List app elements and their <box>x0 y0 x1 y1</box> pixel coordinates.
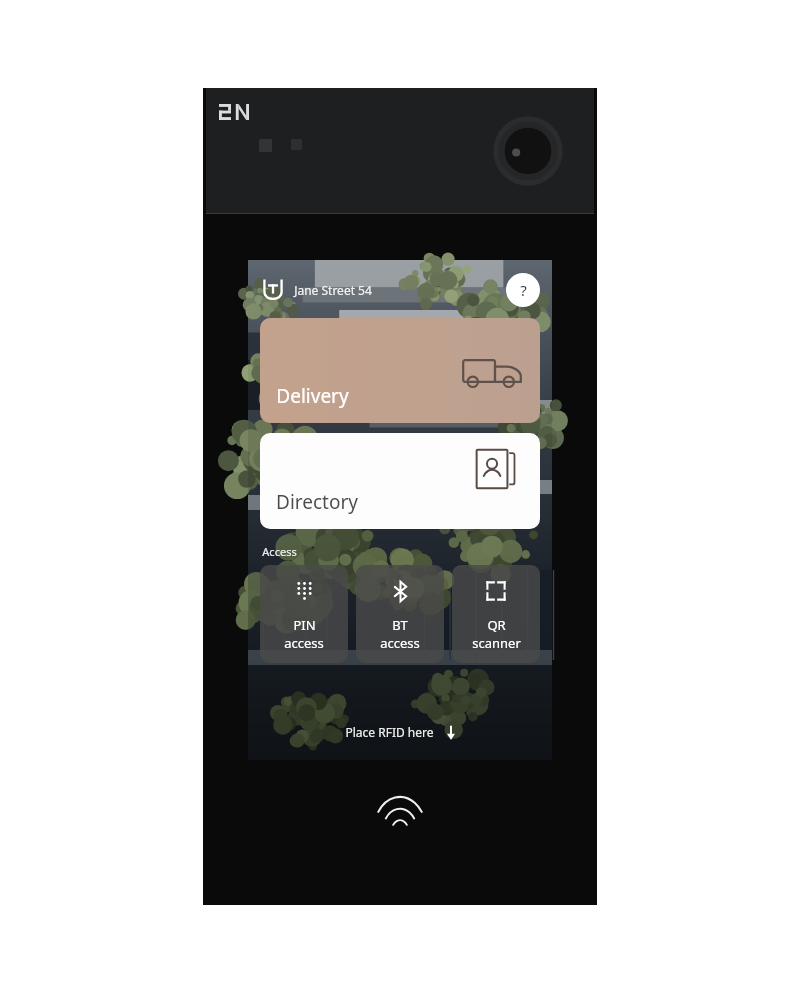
staticText: access <box>284 634 324 652</box>
staticText: Access <box>262 544 297 559</box>
staticText: QR <box>487 616 506 634</box>
staticText: PIN <box>293 616 316 634</box>
staticText: Place RFID here <box>345 724 434 740</box>
button[interactable]: Help <box>506 273 540 307</box>
staticText: Directory <box>276 489 358 515</box>
other: Logo <box>260 277 286 303</box>
button[interactable]: Directory <box>260 433 540 529</box>
staticText: BT <box>392 616 408 634</box>
staticText: access <box>380 634 420 652</box>
button[interactable]: PIN <box>260 565 348 663</box>
other: NFC reader <box>370 788 430 830</box>
staticText: ? <box>520 280 527 300</box>
button[interactable]: BT <box>356 565 444 663</box>
button[interactable]: Delivery <box>260 318 540 423</box>
staticText: Jane Street 54 <box>294 282 372 298</box>
staticText: scanner <box>472 634 521 652</box>
staticText: Delivery <box>276 383 349 409</box>
button[interactable]: QR <box>452 565 540 663</box>
